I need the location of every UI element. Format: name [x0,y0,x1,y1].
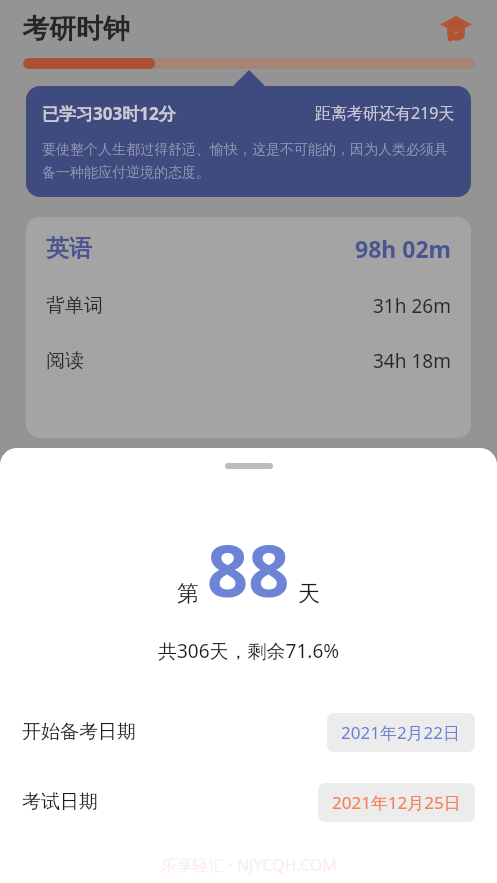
staticText: 考试日期 [22,790,98,814]
staticText: 开始备考日期 [22,720,136,744]
staticText: 考研时钟 [22,12,130,46]
staticText: 2021年12月25日 [332,791,461,814]
staticText: 98h 02m [355,233,451,264]
button[interactable]: Drag handle [225,463,273,469]
button[interactable]: 考试日期 [0,780,497,824]
staticText: 共306天，剩余71.6% [0,638,497,664]
button[interactable]: Graduation cap [435,8,477,50]
staticText: 英语 [46,234,92,263]
button[interactable]: 英语 [26,217,471,438]
staticText: 第 [177,580,199,608]
staticText: 天 [298,580,320,608]
staticText: 要使整个人生都过得舒适、愉快，这是不可能的，因为人类必须具备一种能应付逆境的态度… [42,141,455,181]
staticText: 乐享轻汇 · NJYCQH.COM [0,854,497,876]
staticText: 已学习303时12分 [42,102,176,125]
staticText: 2021年2月22日 [341,721,461,744]
button[interactable]: 已学习303时12分 [26,86,471,197]
staticText: 背单词 [46,294,103,318]
staticText: 31h 26m [373,293,451,319]
staticText: 距离考研还有219天 [315,102,455,124]
button[interactable]: 开始备考日期 [0,710,497,754]
staticText: 34h 18m [373,348,451,374]
button[interactable]: 背单词 [46,279,451,333]
staticText: 88 [207,520,290,618]
button[interactable]: 阅读 [46,334,451,388]
staticText: 阅读 [46,349,84,373]
